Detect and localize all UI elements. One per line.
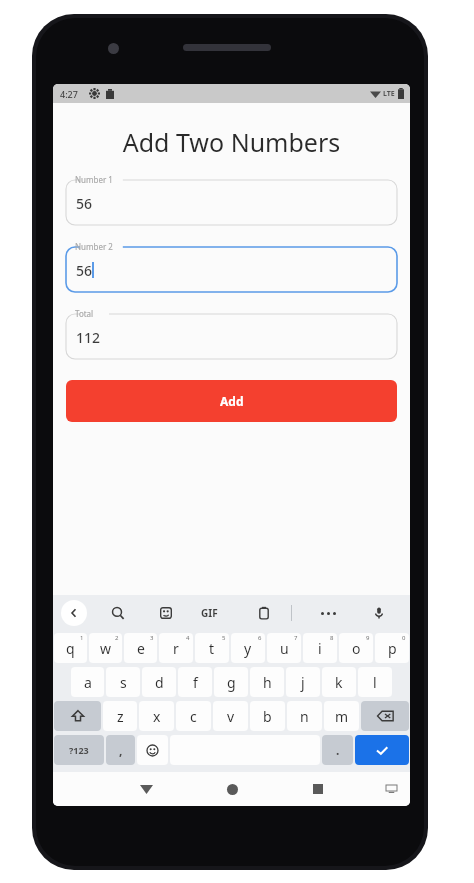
staticText: z: [117, 707, 124, 726]
staticText: g: [227, 673, 236, 692]
button[interactable]: Enter: [355, 735, 409, 765]
staticText: Add Two Numbers: [53, 125, 410, 159]
button[interactable]: .: [322, 735, 353, 765]
button[interactable]: i: [303, 633, 337, 663]
staticText: 4: [186, 634, 190, 642]
staticText: i: [318, 639, 322, 658]
button[interactable]: GIF: [201, 606, 218, 620]
staticText: b: [263, 707, 272, 726]
staticText: 0: [402, 634, 406, 642]
staticText: p: [388, 639, 397, 658]
staticText: k: [335, 673, 343, 692]
staticText: ,: [119, 742, 123, 758]
staticText: a: [84, 673, 92, 692]
button[interactable]: ?123: [54, 735, 104, 765]
button[interactable]: p: [375, 633, 409, 663]
staticText: m: [335, 707, 349, 726]
staticText: v: [227, 707, 235, 726]
staticText: o: [352, 639, 361, 658]
staticText: 112: [76, 328, 101, 347]
staticText: w: [100, 639, 112, 658]
button[interactable]: Search: [105, 600, 131, 626]
staticText: Number 1: [75, 174, 113, 185]
staticText: 8: [330, 634, 334, 642]
button[interactable]: q: [54, 633, 87, 663]
button[interactable]: l: [358, 667, 392, 697]
staticText: 5: [222, 634, 226, 642]
staticText: x: [153, 707, 161, 726]
button[interactable]: t: [195, 633, 229, 663]
button[interactable]: h: [250, 667, 284, 697]
button[interactable]: r: [159, 633, 193, 663]
button[interactable]: e: [124, 633, 157, 663]
button[interactable]: More options: [315, 600, 341, 626]
staticText: f: [193, 673, 198, 692]
staticText: 3: [150, 634, 154, 642]
button[interactable]: Clipboard: [251, 600, 277, 626]
button[interactable]: s: [106, 667, 140, 697]
staticText: r: [173, 639, 179, 658]
button[interactable]: Switch keyboard: [380, 778, 402, 800]
staticText: 6: [258, 634, 262, 642]
button[interactable]: Recents: [303, 774, 333, 804]
button[interactable]: Number 1: [66, 175, 397, 225]
button[interactable]: d: [142, 667, 176, 697]
button[interactable]: c: [176, 701, 211, 731]
staticText: q: [66, 639, 75, 658]
button[interactable]: w: [89, 633, 122, 663]
button[interactable]: f: [178, 667, 212, 697]
staticText: .: [336, 742, 340, 758]
button[interactable]: Home: [217, 774, 247, 804]
staticText: LTE: [383, 89, 395, 99]
button[interactable]: k: [322, 667, 356, 697]
staticText: h: [263, 673, 272, 692]
button[interactable]: Shift: [54, 701, 101, 731]
button[interactable]: Back: [61, 600, 87, 626]
button[interactable]: Emoji: [137, 735, 168, 765]
staticText: e: [137, 639, 145, 658]
button[interactable]: Add: [66, 380, 397, 422]
staticText: s: [120, 673, 127, 692]
staticText: n: [300, 707, 309, 726]
staticText: 7: [294, 634, 298, 642]
button[interactable]: Stickers: [153, 600, 179, 626]
button[interactable]: ,: [106, 735, 135, 765]
button[interactable]: Back: [131, 774, 161, 804]
button[interactable]: x: [139, 701, 174, 731]
button[interactable]: a: [71, 667, 104, 697]
staticText: 56: [76, 261, 93, 280]
staticText: 56: [76, 194, 93, 213]
staticText: c: [190, 707, 197, 726]
button[interactable]: Number 2: [66, 242, 397, 292]
button[interactable]: n: [287, 701, 322, 731]
staticText: d: [155, 673, 164, 692]
staticText: 4:27: [60, 88, 78, 100]
staticText: l: [373, 673, 377, 692]
button[interactable]: j: [286, 667, 320, 697]
button[interactable]: y: [231, 633, 265, 663]
button[interactable]: z: [103, 701, 137, 731]
staticText: 1: [80, 634, 84, 642]
button[interactable]: Voice input: [366, 600, 392, 626]
staticText: Add: [220, 393, 244, 409]
staticText: 9: [366, 634, 370, 642]
staticText: ?123: [69, 744, 89, 756]
staticText: u: [280, 639, 289, 658]
button[interactable]: g: [214, 667, 248, 697]
staticText: t: [209, 639, 215, 658]
button[interactable]: m: [324, 701, 359, 731]
button[interactable]: b: [250, 701, 285, 731]
staticText: Number 2: [75, 241, 113, 252]
staticText: Total: [75, 308, 94, 319]
button[interactable]: u: [267, 633, 301, 663]
button[interactable]: Total: [66, 309, 397, 359]
staticText: y: [244, 639, 252, 658]
button[interactable]: Backspace: [361, 701, 409, 731]
staticText: 2: [115, 634, 119, 642]
button[interactable]: o: [339, 633, 373, 663]
staticText: j: [301, 673, 305, 692]
button[interactable]: v: [213, 701, 248, 731]
